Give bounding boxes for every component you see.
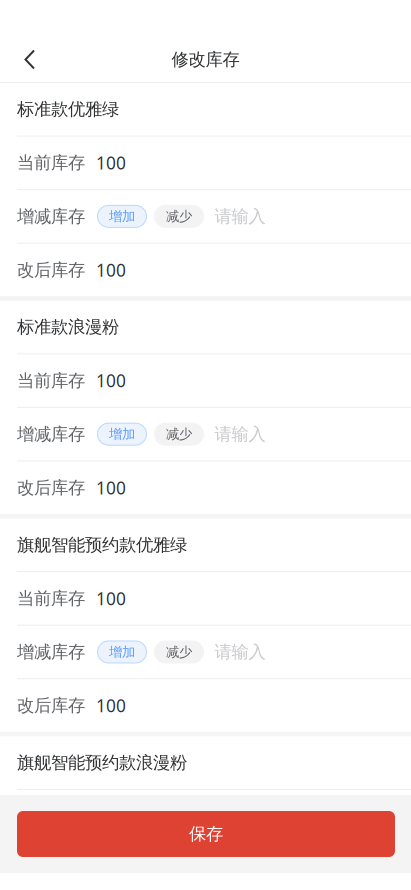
staticText: 增加 [109, 644, 135, 660]
staticText: 100 [96, 694, 126, 717]
staticText: 100 [96, 258, 126, 281]
staticText: 当前库存 [17, 370, 85, 391]
staticText: 增减库存 [17, 423, 85, 445]
staticText: 改后库存 [17, 695, 85, 716]
button[interactable]: 增加 [97, 641, 146, 663]
staticText: 请输入 [214, 859, 265, 880]
staticText: 当前库存 [17, 806, 85, 827]
button[interactable]: 减少 [154, 423, 203, 445]
staticText: 增加 [109, 426, 135, 442]
button[interactable]: 增加 [97, 205, 146, 227]
button[interactable]: 保存 [17, 811, 395, 857]
staticText: 减少 [166, 208, 192, 225]
staticText: 100 [96, 369, 126, 392]
staticText: 请输入 [214, 423, 265, 445]
staticText: 旗舰智能预约款优雅绿 [17, 534, 187, 555]
staticText: 改后库存 [17, 259, 85, 281]
staticText: 旗舰智能预约款浪漫粉 [17, 752, 187, 773]
button[interactable]: Back [0, 37, 54, 82]
staticText: 增加 [109, 862, 135, 878]
staticText: 增减库存 [17, 641, 85, 663]
staticText: 减少 [166, 644, 192, 660]
staticText: 标准款浪漫粉 [17, 316, 119, 338]
button[interactable]: 减少 [154, 205, 203, 227]
staticText: 减少 [166, 426, 192, 442]
staticText: 增减库存 [17, 206, 85, 227]
staticText: 减少 [166, 862, 192, 878]
staticText: 100 [96, 476, 126, 499]
staticText: 100 [96, 805, 126, 828]
staticText: 当前库存 [17, 588, 85, 609]
staticText: 请输入 [214, 641, 265, 663]
button[interactable]: 减少 [154, 641, 203, 663]
staticText: 标准款优雅绿 [17, 99, 119, 120]
staticText: 当前库存 [17, 152, 85, 173]
staticText: 保存 [189, 823, 223, 845]
staticText: 请输入 [214, 206, 265, 227]
button[interactable]: 减少 [154, 859, 203, 881]
staticText: 100 [96, 151, 126, 174]
staticText: 增减库存 [17, 859, 85, 880]
staticText: 100 [96, 587, 126, 610]
staticText: 改后库存 [17, 477, 85, 498]
button[interactable]: 增加 [97, 859, 146, 881]
staticText: 增加 [109, 208, 135, 225]
button[interactable]: 增加 [97, 423, 146, 445]
staticText: 修改库存 [171, 49, 239, 70]
